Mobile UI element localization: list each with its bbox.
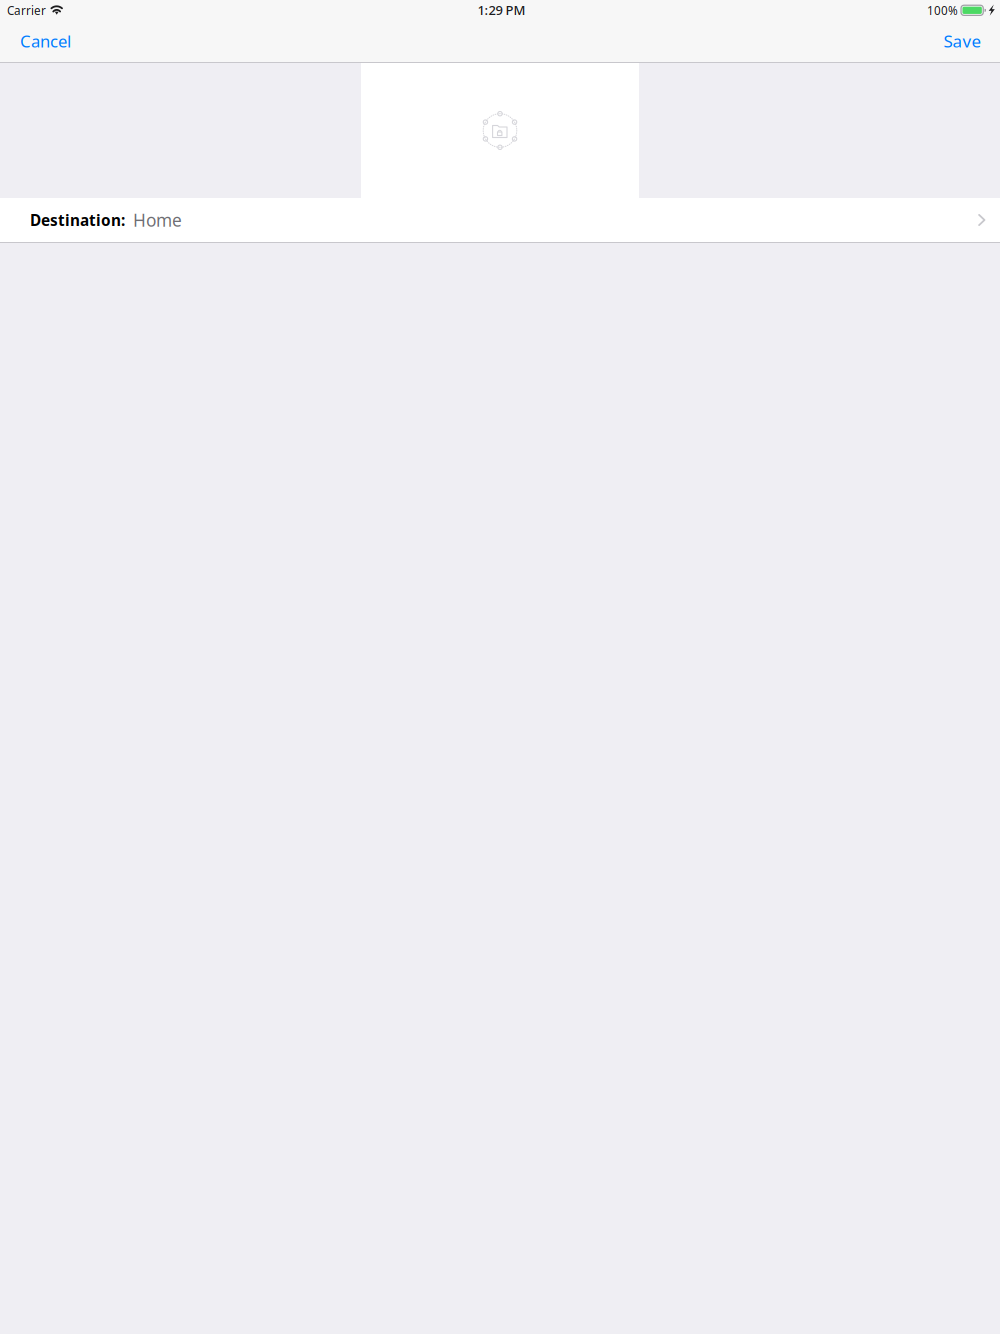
staticText: Cancel <box>20 30 71 52</box>
staticText: Home <box>133 208 182 232</box>
button[interactable]: Destination: <box>0 198 1000 242</box>
staticText: 1:29 PM <box>477 1 525 19</box>
staticText: Destination: <box>30 210 125 230</box>
button[interactable]: Save <box>925 20 1000 62</box>
staticText: Carrier <box>7 3 46 18</box>
button[interactable]: Cancel <box>0 20 91 62</box>
staticText: Save <box>943 29 981 53</box>
staticText: 100% <box>927 3 958 18</box>
